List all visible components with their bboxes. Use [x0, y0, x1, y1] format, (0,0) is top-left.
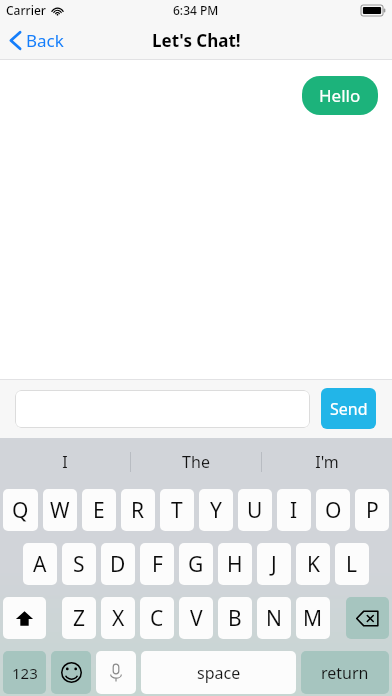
staticText: K — [307, 550, 320, 579]
button[interactable]: J — [257, 543, 291, 585]
staticText: H — [227, 550, 243, 579]
button[interactable]: 123 — [3, 651, 46, 694]
staticText: U — [247, 496, 263, 525]
button[interactable]: R — [121, 489, 155, 531]
button[interactable]: The — [131, 438, 261, 486]
staticText: J — [271, 550, 277, 579]
button[interactable]: I'm — [262, 438, 392, 486]
staticText: 6:34 PM — [173, 2, 219, 18]
staticText: R — [131, 496, 145, 525]
button[interactable]: C — [140, 597, 174, 639]
staticText: I'm — [315, 451, 339, 473]
staticText: C — [150, 604, 164, 633]
button[interactable]: Emoji — [51, 651, 91, 694]
button[interactable] — [15, 390, 310, 428]
staticText: A — [33, 550, 47, 579]
button[interactable]: Hello — [302, 76, 378, 115]
button[interactable]: Z — [62, 597, 96, 639]
staticText: B — [228, 604, 242, 633]
button[interactable]: Y — [199, 489, 233, 531]
staticText: Hello — [319, 84, 361, 107]
staticText: The — [182, 451, 210, 473]
staticText: Back — [26, 29, 64, 52]
button[interactable]: U — [238, 489, 272, 531]
staticText: T — [171, 496, 183, 525]
button[interactable]: return — [301, 651, 389, 694]
staticText: I — [62, 451, 68, 473]
button[interactable]: O — [316, 489, 350, 531]
staticText: O — [325, 496, 342, 525]
staticText: P — [366, 496, 379, 525]
staticText: X — [112, 604, 125, 633]
staticText: Q — [12, 496, 29, 525]
button[interactable]: E — [82, 489, 116, 531]
staticText: space — [197, 662, 241, 684]
staticText: return — [321, 662, 369, 684]
button[interactable]: G — [179, 543, 213, 585]
button[interactable]: I — [277, 489, 311, 531]
staticText: L — [346, 550, 358, 579]
staticText: V — [190, 604, 203, 633]
button[interactable]: S — [62, 543, 96, 585]
button[interactable]: L — [335, 543, 369, 585]
staticText: G — [188, 550, 204, 579]
button[interactable]: Dictation — [96, 651, 136, 694]
button[interactable]: V — [179, 597, 213, 639]
staticText: Let's Chat! — [152, 29, 241, 52]
button[interactable]: Q — [3, 489, 38, 531]
staticText: M — [303, 604, 323, 633]
button[interactable]: space — [141, 651, 296, 694]
button[interactable]: H — [218, 543, 252, 585]
staticText: F — [152, 550, 163, 579]
staticText: S — [73, 550, 85, 579]
button[interactable]: Backspace — [346, 597, 389, 639]
button[interactable]: I — [0, 438, 130, 486]
button[interactable]: N — [257, 597, 291, 639]
staticText: N — [266, 604, 282, 633]
button[interactable]: D — [101, 543, 135, 585]
staticText: I — [290, 496, 298, 525]
button[interactable]: K — [296, 543, 330, 585]
button[interactable]: T — [160, 489, 194, 531]
staticText: Carrier — [6, 2, 46, 18]
staticText: D — [110, 550, 126, 579]
button[interactable]: Shift — [3, 597, 46, 639]
button[interactable]: X — [101, 597, 135, 639]
staticText: Z — [73, 604, 86, 633]
button[interactable]: W — [43, 489, 77, 531]
staticText: W — [50, 496, 70, 525]
button[interactable]: Back — [0, 20, 74, 60]
button[interactable]: F — [140, 543, 174, 585]
staticText: 123 — [12, 663, 38, 683]
button[interactable]: B — [218, 597, 252, 639]
button[interactable]: Send — [321, 388, 376, 429]
button[interactable]: M — [296, 597, 330, 639]
staticText: E — [93, 496, 105, 525]
staticText: Send — [330, 398, 368, 420]
button[interactable]: P — [355, 489, 389, 531]
button[interactable]: A — [23, 543, 57, 585]
staticText: Y — [210, 496, 222, 525]
